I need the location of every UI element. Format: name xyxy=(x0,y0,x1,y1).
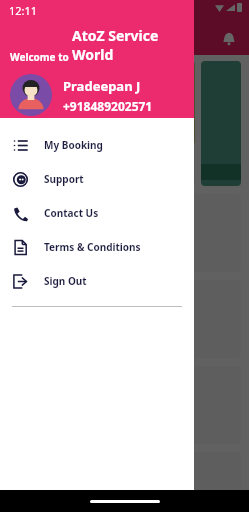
staticText: AtoZ Service World xyxy=(72,26,194,64)
staticText: Terms & Conditions xyxy=(44,240,141,254)
button[interactable]: Support xyxy=(0,162,194,196)
button[interactable]: Microwave Oven Service xyxy=(8,194,241,272)
staticText: +918489202571 xyxy=(63,98,153,114)
button[interactable]: Terms & Conditions xyxy=(0,230,194,264)
staticText: Pradeepan J xyxy=(63,77,141,95)
staticText: My Booking xyxy=(44,138,103,152)
staticText: Sign Out xyxy=(44,274,87,288)
staticText: Why Choose Us? xyxy=(14,147,71,157)
staticText: Microwave Oven Service xyxy=(18,242,109,253)
staticText: Free Servicing 24/7 Customer Service Tra… xyxy=(14,157,67,185)
staticText: Support xyxy=(44,172,84,186)
button[interactable]: Geyser / Water Heater Service xyxy=(8,366,241,444)
staticText: 12:11 xyxy=(9,3,38,18)
button[interactable]: Fridge / Freezer Service xyxy=(8,280,241,358)
button[interactable] xyxy=(201,61,241,186)
button[interactable]: Sign Out xyxy=(0,264,194,298)
button[interactable]: My Booking xyxy=(0,128,194,162)
button[interactable]: Notifications xyxy=(219,29,239,49)
button[interactable]: Auditing xyxy=(8,452,241,512)
staticText: Contact Us xyxy=(44,206,99,220)
staticText: Welcome to xyxy=(10,50,72,64)
button[interactable]: Contact Us xyxy=(0,196,194,230)
button[interactable]: Why Choose Us? xyxy=(8,61,195,186)
